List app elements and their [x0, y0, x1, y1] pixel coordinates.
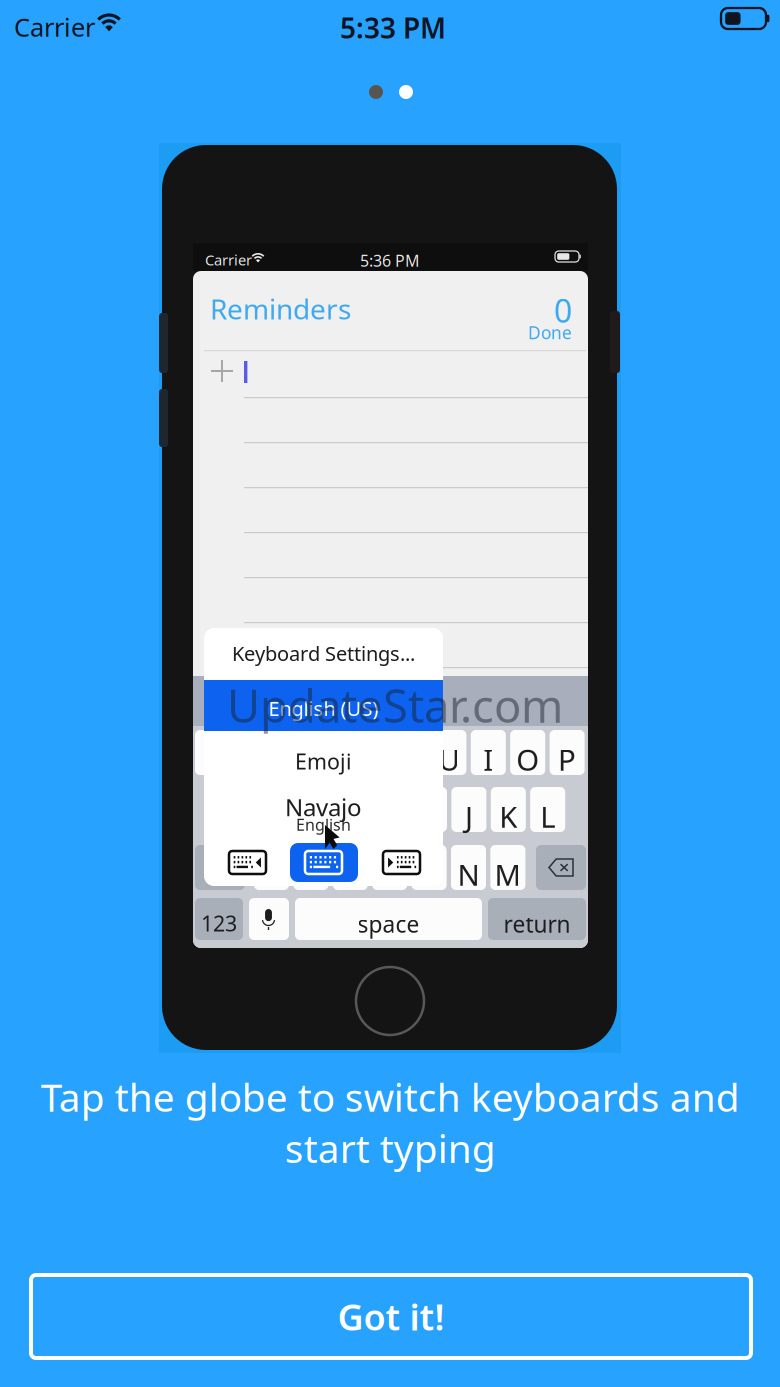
staticText: 5:33 PM	[340, 9, 446, 46]
staticText: Reminders	[210, 290, 351, 327]
staticText: I	[483, 740, 493, 779]
staticText: Keyboard Settings...	[232, 640, 415, 667]
button[interactable]: Got it!	[31, 1275, 751, 1358]
staticText: Got it!	[337, 1293, 444, 1340]
staticText: U	[438, 740, 459, 779]
staticText: P	[558, 740, 576, 779]
staticText: space	[357, 909, 419, 939]
staticText: 0	[554, 289, 572, 331]
staticText: Tap the globe to switch keyboards and st…	[40, 1071, 739, 1174]
staticText: return	[503, 909, 570, 939]
staticText: English (US)	[268, 695, 378, 722]
staticText: Emoji	[295, 747, 352, 775]
staticText: Carrier	[205, 250, 252, 269]
staticText: Carrier	[14, 10, 95, 44]
staticText: UpdateStar.com	[227, 675, 563, 735]
staticText: English	[296, 814, 351, 835]
staticText: 123	[201, 909, 237, 937]
staticText: K	[499, 797, 517, 836]
staticText: Done	[528, 321, 572, 344]
staticText: L	[540, 797, 555, 836]
staticText: N	[457, 855, 479, 894]
staticText: O	[516, 740, 539, 779]
staticText: J	[465, 797, 473, 836]
staticText: M	[494, 855, 521, 894]
staticText: 5:36 PM	[360, 250, 420, 271]
staticText: Navajo	[285, 791, 362, 823]
